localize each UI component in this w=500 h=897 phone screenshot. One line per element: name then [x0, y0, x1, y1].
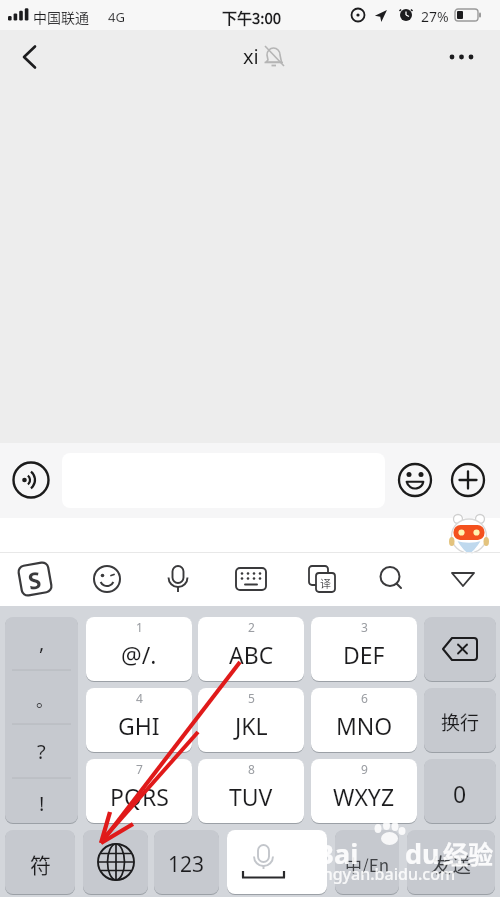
button[interactable]: [84, 557, 128, 601]
button[interactable]: 5: [198, 688, 304, 752]
staticText: GHI: [118, 710, 160, 741]
staticText: 经验: [443, 835, 494, 871]
staticText: ABC: [229, 639, 274, 670]
button[interactable]: 中/En: [335, 830, 399, 894]
staticText: Bai: [316, 835, 359, 872]
staticText: TUV: [229, 781, 273, 812]
button[interactable]: 123: [154, 830, 219, 894]
staticText: du: [405, 835, 440, 872]
button[interactable]: [368, 557, 412, 601]
staticText: 3: [361, 619, 368, 635]
staticText: 27%: [421, 7, 449, 26]
staticText: xi: [243, 43, 259, 70]
button[interactable]: 0: [424, 759, 496, 823]
button[interactable]: [450, 462, 486, 498]
staticText: 下午3:00: [222, 7, 282, 29]
staticText: 发送: [431, 850, 471, 879]
staticText: 译: [320, 575, 331, 591]
button[interactable]: [439, 557, 483, 601]
button[interactable]: [10, 40, 50, 74]
staticText: 9: [361, 761, 368, 777]
button[interactable]: [226, 557, 270, 601]
button[interactable]: 符: [5, 830, 75, 894]
button[interactable]: 8: [198, 759, 304, 823]
staticText: S: [25, 563, 44, 596]
button[interactable]: 3: [311, 617, 417, 681]
button[interactable]: [13, 557, 57, 601]
staticText: 中国联通: [33, 7, 89, 27]
button[interactable]: 4: [86, 688, 192, 752]
staticText: DEF: [343, 639, 385, 670]
staticText: 7: [136, 761, 143, 777]
staticText: ,: [39, 629, 45, 656]
staticText: JKL: [235, 710, 268, 741]
button[interactable]: 换行: [424, 688, 496, 752]
staticText: 4G: [108, 8, 125, 26]
staticText: PQRS: [110, 781, 169, 812]
button[interactable]: [440, 42, 485, 72]
button[interactable]: [83, 830, 148, 894]
staticText: 4: [136, 690, 143, 706]
staticText: 2: [248, 619, 255, 635]
button[interactable]: 1: [86, 617, 192, 681]
staticText: WXYZ: [333, 781, 395, 812]
button[interactable]: [227, 830, 327, 894]
button[interactable]: 发送: [407, 830, 495, 894]
staticText: 6: [361, 690, 368, 706]
button[interactable]: 2: [198, 617, 304, 681]
staticText: 1: [136, 619, 143, 635]
staticText: 123: [168, 850, 205, 879]
staticText: 0: [453, 778, 467, 809]
staticText: !: [39, 790, 45, 817]
button[interactable]: 7: [86, 759, 192, 823]
staticText: 换行: [441, 708, 480, 736]
staticText: 。: [36, 687, 53, 712]
button[interactable]: [397, 462, 433, 498]
button[interactable]: 9: [311, 759, 417, 823]
staticText: MNO: [336, 710, 393, 741]
button[interactable]: [424, 617, 496, 681]
staticText: 符: [30, 849, 51, 879]
button[interactable]: 6: [311, 688, 417, 752]
button[interactable]: [13, 462, 49, 498]
staticText: @/.: [121, 639, 157, 670]
button[interactable]: ,: [5, 617, 78, 823]
button[interactable]: [155, 557, 199, 601]
button[interactable]: [297, 557, 341, 601]
staticText: 8: [248, 761, 255, 777]
staticText: 中/En: [345, 852, 390, 877]
staticText: 5: [248, 690, 255, 706]
staticText: ?: [37, 738, 46, 765]
staticText: jingyan.baidu.com: [314, 863, 456, 885]
